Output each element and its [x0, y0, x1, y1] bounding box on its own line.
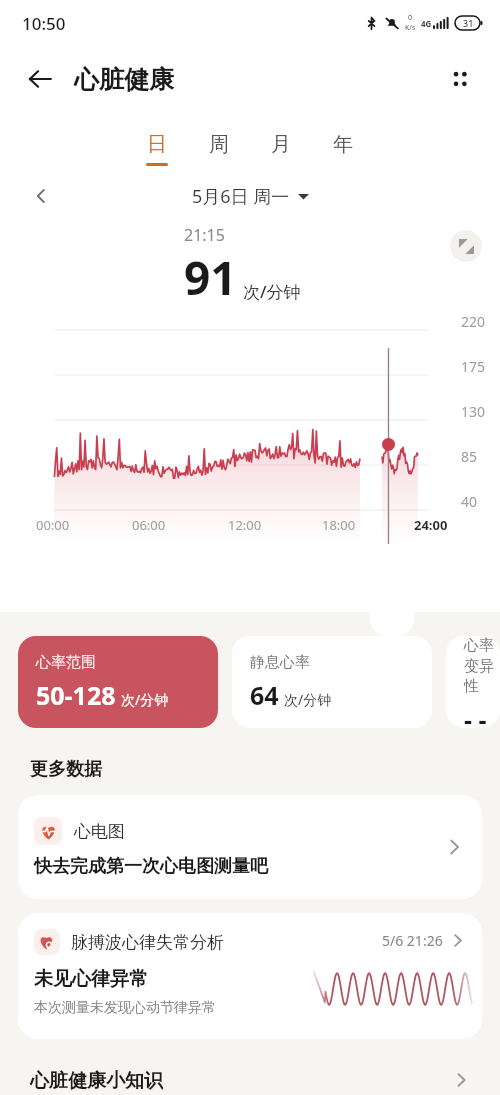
staticText: 心脏健康小知识: [30, 1069, 163, 1091]
button[interactable]: 心率范围: [18, 636, 218, 728]
staticText: 次/分钟: [284, 690, 332, 709]
staticText: 脉搏波心律失常分析: [71, 932, 224, 953]
button[interactable]: 月: [250, 130, 312, 168]
staticText: 心率变异性: [464, 636, 500, 696]
staticText: 85: [461, 447, 478, 466]
staticText: 00:00: [36, 516, 70, 534]
staticText: 21:15: [184, 224, 225, 246]
staticText: 5/6 21:26: [382, 931, 443, 950]
staticText: 4G: [421, 18, 432, 29]
button[interactable]: 日: [126, 130, 188, 168]
staticText: 10:50: [22, 12, 66, 35]
staticText: 50-128: [36, 678, 116, 712]
button[interactable]: 静息心率: [232, 636, 432, 728]
staticText: 31: [463, 17, 474, 29]
staticText: 18:00: [322, 516, 356, 534]
staticText: 5月6日 周一: [192, 184, 290, 209]
button[interactable]: Previous day: [22, 177, 60, 215]
staticText: 未见心律异常: [34, 967, 148, 991]
staticText: 心率范围: [36, 653, 96, 672]
button[interactable]: 心脏健康小知识: [0, 1065, 500, 1095]
button[interactable]: 周: [188, 130, 250, 168]
staticText: 本次测量未发现心动节律异常: [34, 999, 216, 1017]
staticText: 心电图: [74, 821, 125, 842]
button[interactable]: 脉搏波心律失常分析: [18, 913, 482, 1039]
staticText: 静息心率: [250, 653, 310, 672]
button[interactable]: 年: [312, 130, 374, 168]
staticText: 24:00: [414, 516, 448, 534]
button[interactable]: 心电图: [18, 795, 482, 899]
staticText: K/s: [405, 23, 416, 33]
button[interactable]: Back: [20, 59, 60, 99]
staticText: 月: [271, 132, 291, 157]
staticText: 220: [461, 312, 486, 331]
staticText: 周: [209, 132, 229, 157]
staticText: 06:00: [132, 516, 166, 534]
staticText: 91: [184, 246, 237, 309]
staticText: 175: [461, 357, 486, 376]
button[interactable]: 心率变异性: [446, 636, 500, 728]
button[interactable]: More options: [438, 57, 482, 101]
button[interactable]: 5月6日 周一: [192, 184, 309, 209]
staticText: 次/分钟: [243, 280, 301, 303]
staticText: 0: [408, 13, 413, 23]
staticText: 64: [250, 678, 279, 712]
staticText: 快去完成第一次心电图测量吧: [34, 855, 268, 878]
staticText: 次/分钟: [121, 690, 169, 709]
staticText: - -: [464, 702, 487, 728]
staticText: 40: [461, 492, 478, 511]
staticText: 更多数据: [30, 758, 102, 781]
staticText: 130: [461, 402, 486, 421]
staticText: 年: [333, 132, 353, 157]
button[interactable]: Fullscreen chart: [450, 230, 482, 262]
staticText: 心脏健康: [74, 64, 174, 95]
staticText: 日: [147, 132, 167, 157]
staticText: 12:00: [228, 516, 262, 534]
